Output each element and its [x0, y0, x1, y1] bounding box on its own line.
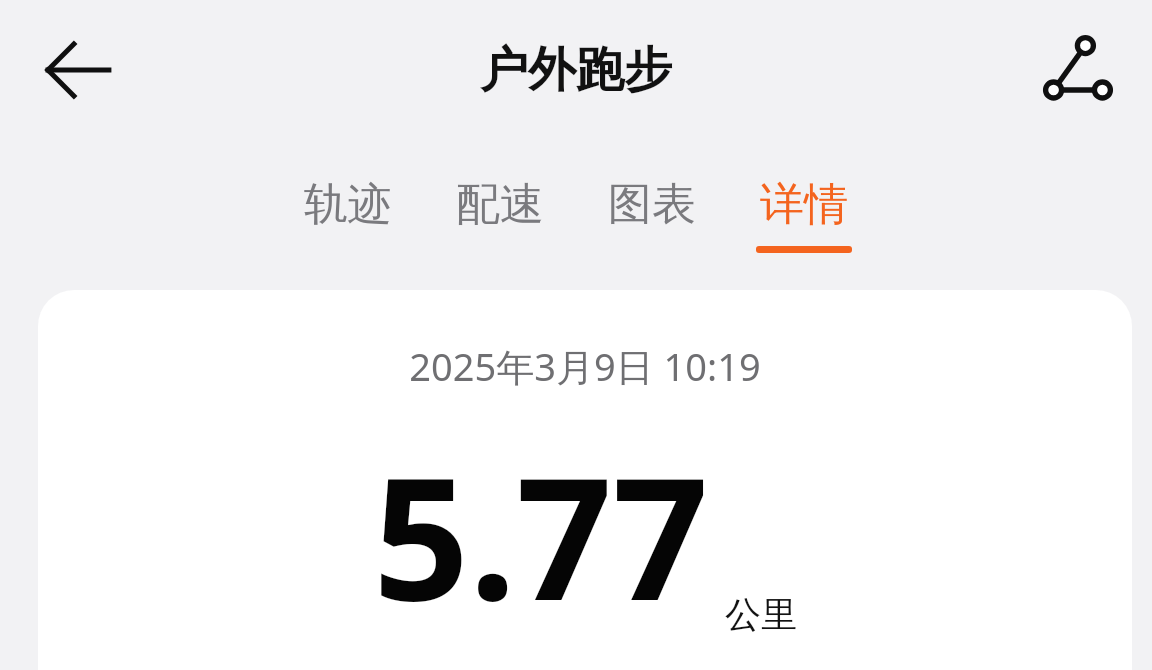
button[interactable]: 配速 [448, 171, 552, 259]
button[interactable]: Share [1032, 24, 1124, 116]
staticText: 详情 [760, 177, 848, 232]
staticText: 轨迹 [304, 177, 392, 232]
staticText: 2025年3月9日 10:19 [409, 340, 761, 392]
button[interactable]: 轨迹 [296, 171, 400, 259]
button[interactable]: 图表 [600, 171, 704, 259]
staticText: 公里 [725, 592, 797, 637]
staticText: 户外跑步 [480, 40, 672, 100]
button[interactable]: 2025年3月9日 10:19 [38, 290, 1132, 670]
staticText: 图表 [608, 177, 696, 232]
staticText: 5.77 [373, 420, 709, 649]
button[interactable]: Back [30, 24, 122, 116]
button[interactable]: 详情 [752, 171, 856, 259]
staticText: 配速 [456, 177, 544, 232]
